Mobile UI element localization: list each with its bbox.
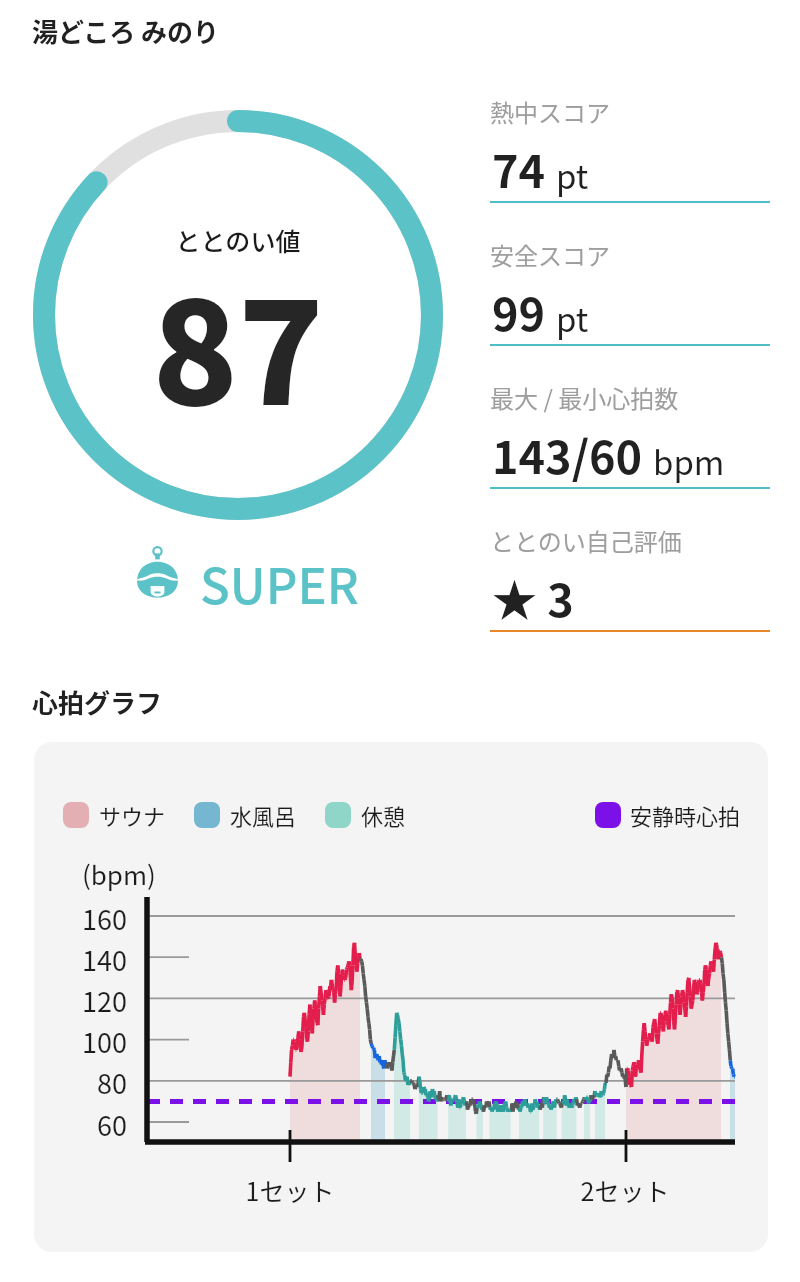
staticText: サウナ bbox=[99, 799, 166, 831]
staticText: 休憩 bbox=[361, 799, 406, 831]
staticText: 99 bbox=[492, 279, 546, 344]
staticText: 熱中スコア bbox=[490, 94, 610, 129]
staticText: ★ 3 bbox=[492, 565, 574, 630]
staticText: 140 bbox=[56, 940, 127, 979]
staticText: bpm bbox=[653, 437, 725, 485]
staticText: 120 bbox=[56, 981, 127, 1020]
staticText: 最大 / 最小心拍数 bbox=[490, 380, 679, 415]
staticText: 2セット bbox=[565, 1172, 685, 1208]
staticText: ととのい自己評価 bbox=[490, 523, 682, 558]
staticText: 60 bbox=[56, 1105, 127, 1144]
staticText: SUPER bbox=[200, 547, 360, 618]
staticText: 100 bbox=[56, 1022, 127, 1061]
staticText: 160 bbox=[56, 899, 127, 938]
staticText: 湯どころ みのり bbox=[32, 12, 220, 50]
staticText: pt bbox=[556, 294, 589, 342]
staticText: (bpm) bbox=[82, 855, 156, 893]
staticText: 水風呂 bbox=[230, 799, 297, 831]
staticText: 74 bbox=[492, 136, 546, 201]
staticText: ととのい値 bbox=[33, 222, 443, 258]
staticText: 安静時心拍 bbox=[630, 799, 741, 831]
staticText: 心拍グラフ bbox=[32, 683, 163, 721]
staticText: pt bbox=[556, 151, 589, 199]
staticText: 安全スコア bbox=[490, 237, 610, 272]
staticText: 80 bbox=[56, 1063, 127, 1102]
staticText: 87 bbox=[33, 241, 443, 445]
staticText: 1セット bbox=[230, 1172, 350, 1208]
staticText: 143/60 bbox=[492, 422, 643, 487]
